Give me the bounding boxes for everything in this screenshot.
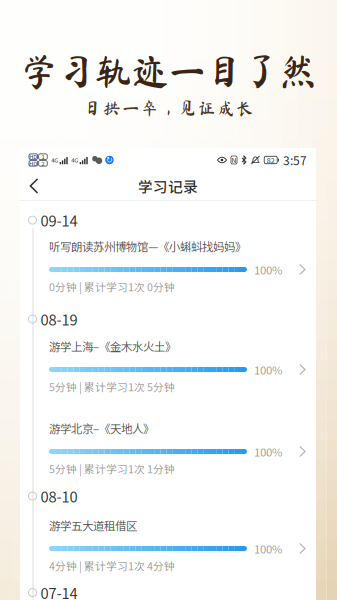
staticText: 游学上海–《金木水火土》 [49, 338, 176, 355]
button[interactable]: 游学五大道租借区 [49, 517, 318, 575]
button[interactable]: 游学北京–《天地人》 [49, 420, 318, 478]
staticText: HD [29, 153, 37, 161]
staticText: 100% [254, 540, 282, 557]
staticText: 4G [51, 156, 58, 164]
staticText: 2 [41, 159, 44, 167]
staticText: 听写朗读苏州博物馆—《小蝌蚪找妈妈》 [49, 238, 246, 255]
staticText: N [231, 155, 236, 165]
staticText: 100% [254, 261, 282, 278]
staticText: ↻ [106, 155, 113, 165]
staticText: 07-14 [40, 582, 77, 600]
button[interactable]: 游学上海–《金木水火土》 [49, 338, 318, 396]
staticText: 4分钟 | 累计学习1次 4分钟 [49, 558, 175, 573]
staticText: 游学北京–《天地人》 [49, 420, 154, 437]
button[interactable]: Back [20, 173, 48, 199]
staticText: 3:57 [283, 151, 307, 169]
staticText: 82 [267, 155, 275, 165]
staticText: 09-14 [40, 209, 77, 231]
staticText: 08-19 [40, 308, 77, 330]
staticText: 学习记录 [138, 175, 198, 197]
staticText: 0分钟 | 累计学习1次 0分钟 [49, 279, 175, 294]
staticText: 100% [254, 361, 282, 378]
staticText: 5分钟 | 累计学习1次 5分钟 [49, 379, 175, 394]
staticText: 1 [41, 153, 44, 161]
staticText: HD [29, 159, 37, 167]
staticText: 08-10 [40, 485, 77, 507]
staticText: 学习轨迹一目了然 [20, 52, 316, 90]
button[interactable]: 听写朗读苏州博物馆—《小蝌蚪找妈妈》 [49, 238, 318, 296]
staticText: 游学五大道租借区 [49, 517, 137, 534]
staticText: 4G [71, 156, 78, 164]
staticText: 日拱一卒，见证成长 [84, 99, 253, 117]
staticText: 5分钟 | 累计学习1次 1分钟 [49, 461, 175, 476]
staticText: 100% [254, 443, 282, 460]
